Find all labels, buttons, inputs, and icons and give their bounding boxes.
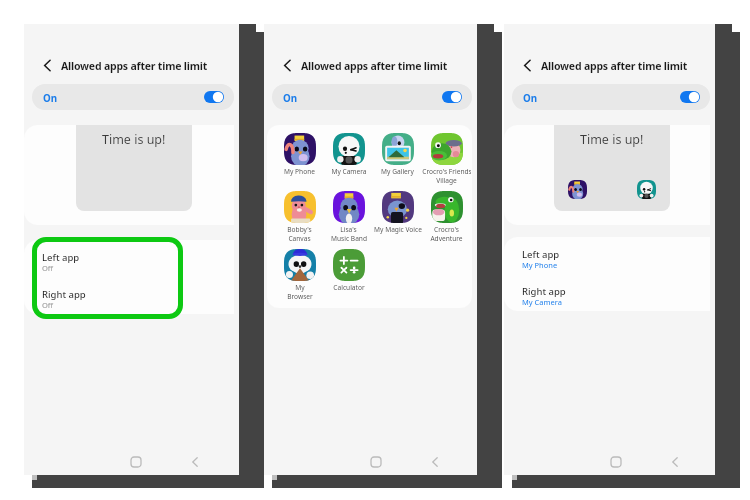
staticText: Music Band	[331, 234, 367, 243]
button[interactable]: Home	[364, 450, 388, 474]
button[interactable]: My Gallery	[373, 133, 422, 176]
button[interactable]: On	[512, 84, 710, 110]
button[interactable]: Left app	[24, 240, 234, 277]
staticText: Allowed apps after time limit	[541, 59, 687, 73]
button[interactable]: On	[272, 84, 472, 110]
staticText: On	[523, 92, 538, 105]
button[interactable]: Crocro's	[422, 191, 471, 243]
staticText: My Gallery	[381, 167, 414, 176]
staticText: My Phone	[284, 167, 315, 176]
staticText: My Camera	[331, 167, 367, 176]
button[interactable]: On	[32, 84, 234, 110]
staticText: Browser	[287, 292, 313, 301]
staticText: Time is up!	[102, 131, 166, 148]
button[interactable]: My	[275, 249, 324, 301]
button[interactable]: Bobby's	[275, 191, 324, 243]
staticText: Right app	[42, 288, 86, 301]
staticText: Right app	[522, 285, 566, 298]
staticText: Off	[42, 263, 54, 273]
button[interactable]: My Magic Voice	[373, 191, 422, 234]
staticText: Crocro's	[434, 225, 459, 234]
button[interactable]: Right app	[504, 274, 710, 311]
button[interactable]: My Camera	[324, 133, 373, 176]
button[interactable]: Crocro's Friends	[422, 133, 471, 185]
button[interactable]: Back	[183, 450, 207, 474]
staticText: On	[283, 92, 298, 105]
staticText: On	[43, 92, 58, 105]
button[interactable]: Navigate up	[519, 57, 536, 74]
staticText: Bobby's	[287, 225, 312, 234]
button[interactable]: Calculator	[324, 249, 373, 292]
button[interactable]: My Phone	[275, 133, 324, 176]
staticText: Canvas	[288, 234, 311, 243]
staticText: Calculator	[333, 283, 365, 292]
button[interactable]: Left app	[504, 237, 710, 274]
staticText: Left app	[522, 248, 560, 261]
staticText: Village	[436, 176, 457, 185]
button[interactable]: Home	[604, 450, 628, 474]
staticText: Allowed apps after time limit	[301, 59, 447, 73]
button[interactable]: Navigate up	[39, 57, 56, 74]
staticText: Adventure	[430, 234, 463, 243]
button[interactable]: Home	[124, 450, 148, 474]
staticText: Lisa's	[340, 225, 357, 234]
staticText: My Phone	[522, 260, 558, 270]
button[interactable]: Back	[423, 450, 447, 474]
staticText: Left app	[42, 251, 80, 264]
staticText: Time is up!	[580, 131, 644, 148]
staticText: Allowed apps after time limit	[61, 59, 207, 73]
button[interactable]: Navigate up	[279, 57, 296, 74]
staticText: My Magic Voice	[374, 225, 422, 234]
staticText: My Camera	[522, 297, 562, 307]
staticText: Crocro's Friends	[422, 167, 471, 176]
button[interactable]: Lisa's	[324, 191, 373, 243]
button[interactable]: Right app	[24, 277, 234, 314]
staticText: Off	[42, 300, 54, 310]
staticText: My	[295, 283, 305, 292]
button[interactable]: Back	[663, 450, 687, 474]
